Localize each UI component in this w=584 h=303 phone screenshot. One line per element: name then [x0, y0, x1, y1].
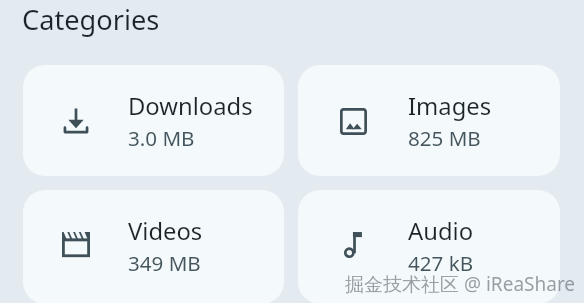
button[interactable]: Audio — [298, 190, 560, 303]
staticText: Images — [408, 90, 492, 122]
staticText: Audio — [408, 215, 474, 247]
staticText: 349 MB — [128, 249, 201, 277]
staticText: Downloads — [128, 90, 253, 122]
other: Videos — [62, 232, 90, 256]
staticText: 3.0 MB — [128, 124, 195, 152]
other: Downloads — [63, 108, 89, 134]
button[interactable]: Images — [298, 65, 560, 176]
staticText: 427 kB — [408, 249, 474, 277]
staticText: Videos — [128, 215, 203, 247]
other: Audio — [338, 231, 364, 257]
staticText: Categories — [22, 1, 160, 38]
button[interactable]: Videos — [23, 190, 284, 303]
other: Images — [340, 108, 367, 135]
staticText: 825 MB — [408, 124, 481, 152]
staticText: 掘金技术社区 @ iReaShare — [345, 271, 576, 297]
button[interactable]: Downloads — [23, 65, 284, 176]
